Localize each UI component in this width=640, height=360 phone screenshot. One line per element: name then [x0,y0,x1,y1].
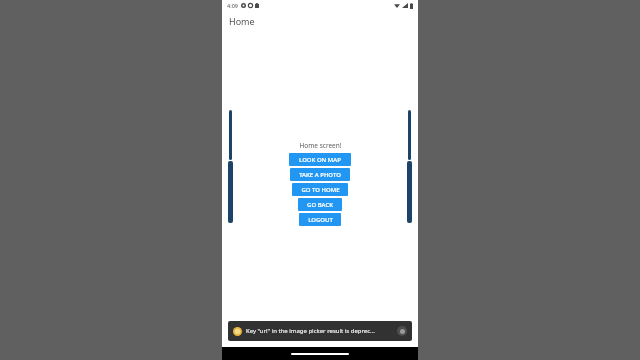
staticText: Home [229,15,255,27]
button[interactable]: TAKE A PHOTO [290,168,350,181]
button[interactable]: Dismiss [397,326,407,336]
button[interactable]: LOOK ON MAP [289,153,351,166]
staticText: LOGOUT [308,216,333,224]
staticText: GO TO HOME [301,186,340,194]
button[interactable]: Edge panel handle lower [407,161,412,223]
button[interactable]: Edge panel handle [408,110,411,160]
button[interactable]: GO TO HOME [292,183,348,196]
button[interactable]: LOGOUT [299,213,341,226]
staticText: GO BACK [307,201,333,209]
button[interactable]: Edge panel handle lower [228,161,233,223]
button[interactable]: GO BACK [298,198,342,211]
staticText: TAKE A PHOTO [299,171,341,179]
staticText: LOOK ON MAP [299,156,341,164]
button[interactable]: Edge panel handle [229,110,232,160]
staticText: 4:09 [227,2,238,9]
staticText: Key "uri" in the image picker result is … [246,327,394,335]
staticText: Home screen! [299,141,342,150]
